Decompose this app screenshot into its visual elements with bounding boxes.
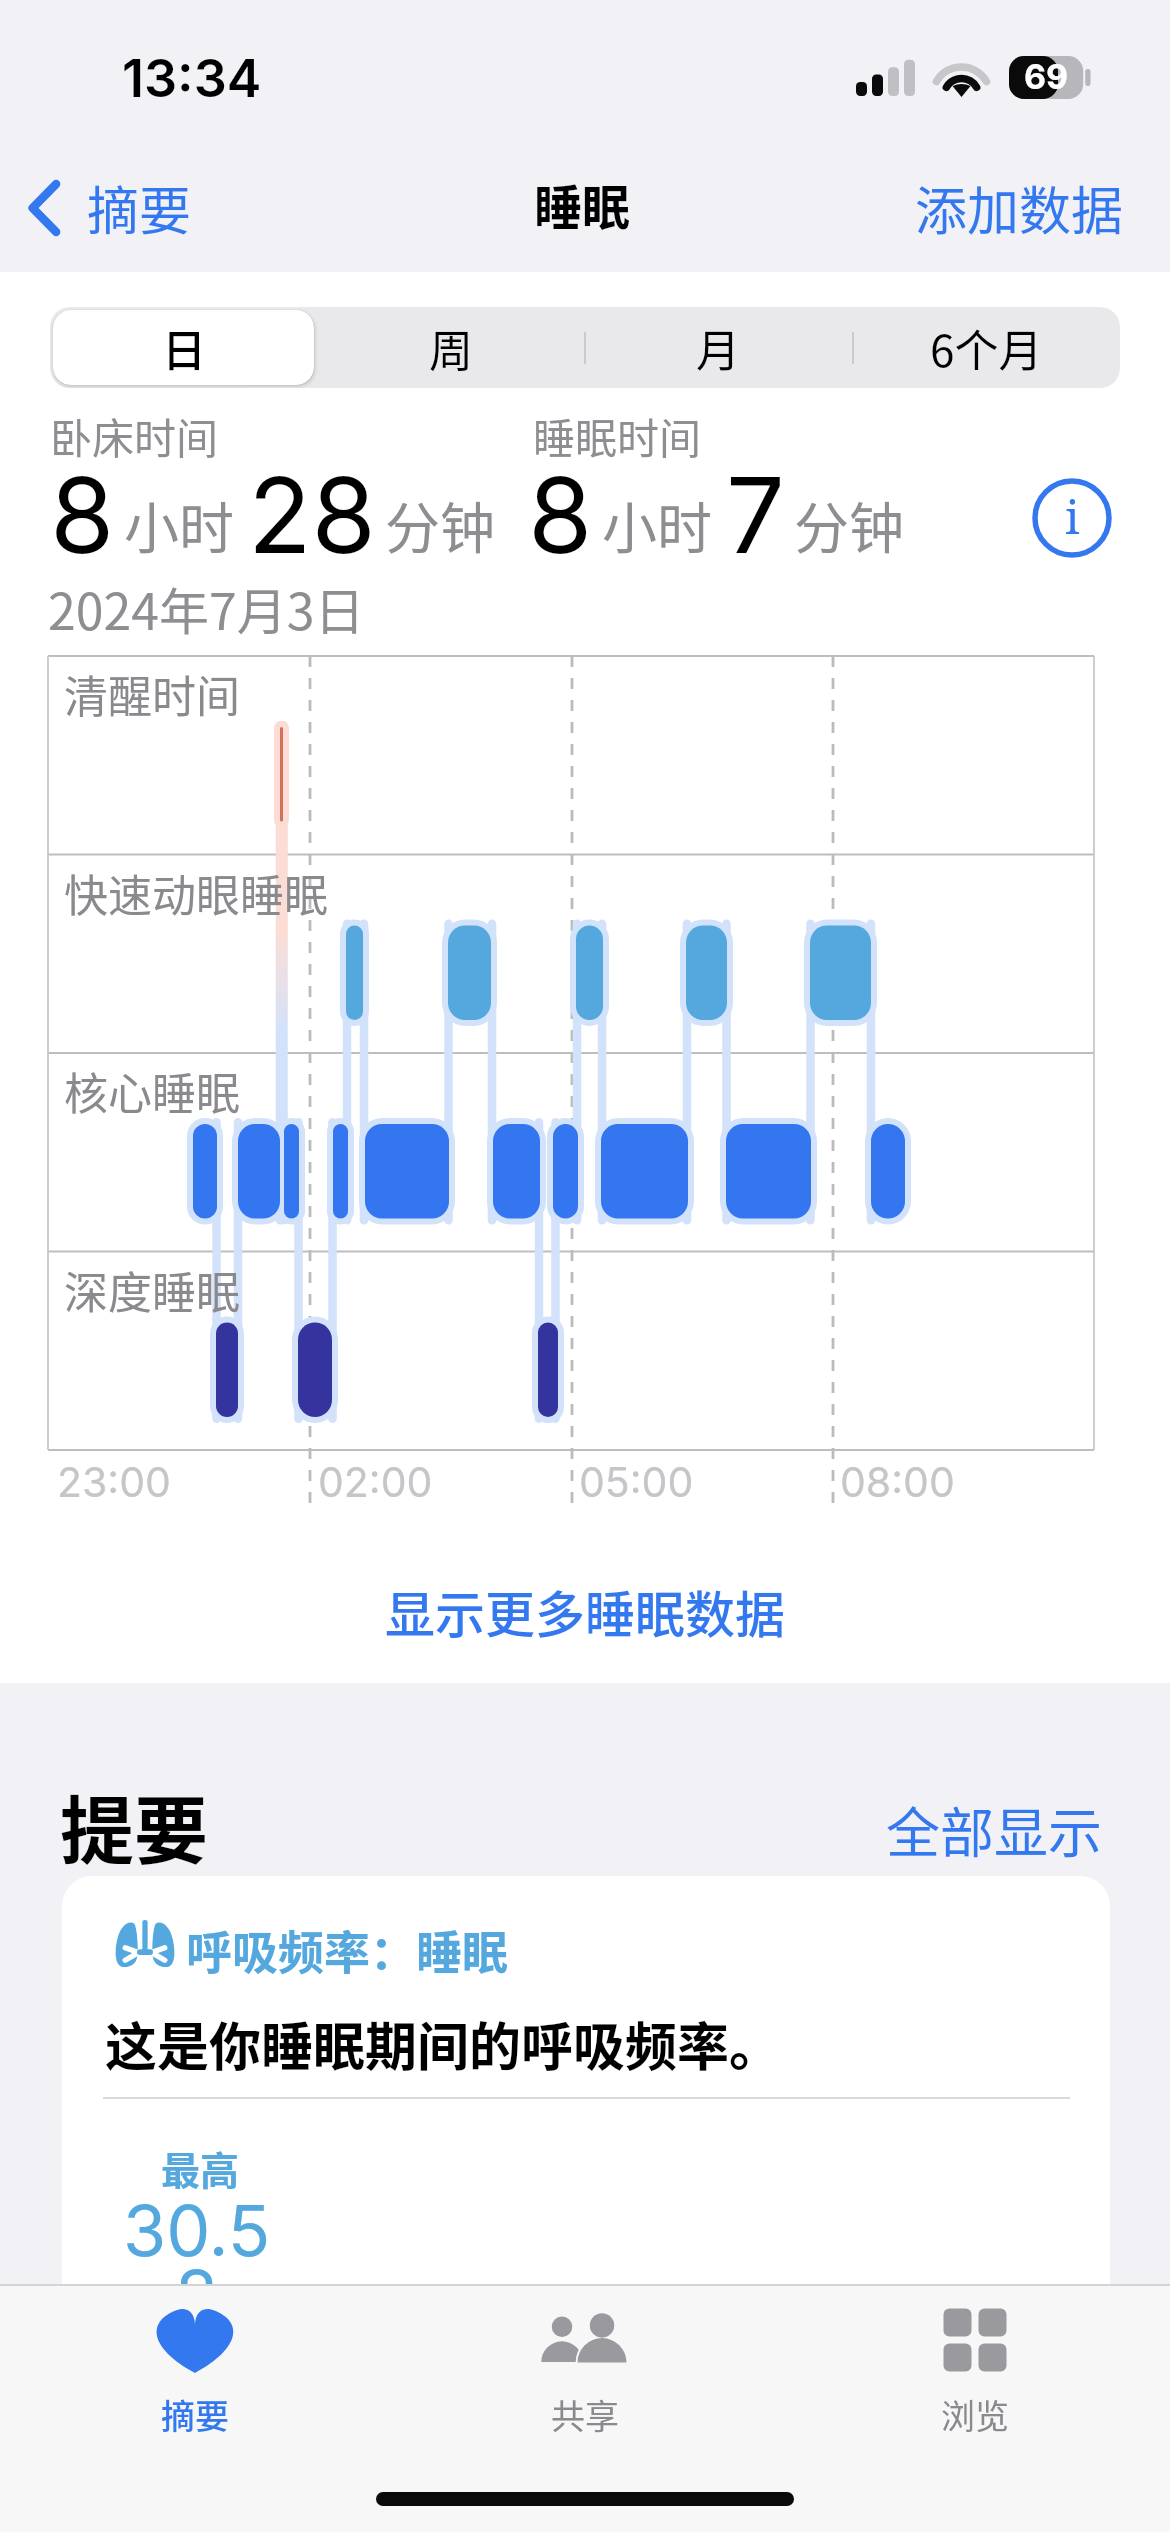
button[interactable]: 周 bbox=[317, 307, 584, 388]
staticText: 分钟 bbox=[794, 484, 905, 564]
staticText: 7 bbox=[726, 452, 785, 578]
staticText: 月 bbox=[696, 316, 740, 380]
button[interactable]: 6个月 bbox=[852, 307, 1120, 388]
button[interactable]: 呼吸频率：睡眠 bbox=[62, 1876, 1110, 2286]
staticText: 8 bbox=[175, 2253, 219, 2286]
staticText: 小时 bbox=[124, 484, 235, 564]
button[interactable]: 浏览 bbox=[780, 2286, 1170, 2532]
staticText: 深度睡眠 bbox=[64, 1258, 240, 1322]
button[interactable]: 共享 bbox=[390, 2286, 780, 2532]
button[interactable]: 全部显示 bbox=[880, 1784, 1108, 1874]
staticText: 清醒时间 bbox=[64, 662, 240, 726]
staticText: 摘要 bbox=[161, 2390, 229, 2439]
staticText: 28 bbox=[248, 452, 376, 578]
staticText: 周 bbox=[429, 316, 473, 380]
staticText: 13:34 bbox=[122, 47, 262, 110]
staticText: 02:00 bbox=[318, 1457, 433, 1507]
staticText: 8 bbox=[50, 452, 115, 578]
button[interactable]: 日 bbox=[50, 307, 317, 388]
staticText: 提要 bbox=[60, 1772, 208, 1879]
staticText: 6个月 bbox=[930, 316, 1043, 380]
button[interactable]: 显示更多睡眠数据 bbox=[0, 1556, 1170, 1666]
button[interactable]: 添加数据 bbox=[907, 158, 1132, 257]
staticText: 显示更多睡眠数据 bbox=[385, 1575, 785, 1647]
staticText: 30.5 bbox=[123, 2188, 271, 2273]
staticText: 2024年7月3日 bbox=[48, 572, 365, 644]
button[interactable]: 摘要 bbox=[0, 2286, 390, 2532]
button[interactable]: Info bbox=[1032, 478, 1112, 558]
staticText: 摘要 bbox=[87, 170, 192, 245]
staticText: 呼吸频率：睡眠 bbox=[186, 1916, 508, 1983]
staticText: 69 bbox=[1024, 56, 1069, 97]
staticText: 日 bbox=[162, 316, 206, 380]
staticText: 小时 bbox=[602, 484, 713, 564]
staticText: 卧床时间 bbox=[50, 405, 219, 466]
staticText: i bbox=[1065, 485, 1080, 548]
staticText: 核心睡眠 bbox=[64, 1059, 240, 1123]
staticText: 23:00 bbox=[57, 1457, 171, 1507]
staticText: 分钟 bbox=[385, 484, 496, 564]
staticText: 睡眠 bbox=[534, 169, 631, 239]
button[interactable]: Back to 摘要 bbox=[17, 158, 200, 257]
staticText: 05:00 bbox=[579, 1457, 694, 1507]
staticText: 浏览 bbox=[941, 2390, 1009, 2439]
staticText: 08:00 bbox=[840, 1457, 955, 1507]
staticText: 快速动眼睡眠 bbox=[64, 861, 328, 925]
staticText: 8 bbox=[528, 452, 593, 578]
staticText: 最高 bbox=[161, 2140, 240, 2196]
staticText: 这是你睡眠期间的呼吸频率。 bbox=[105, 2006, 782, 2081]
button[interactable]: 月 bbox=[584, 307, 852, 388]
staticText: 睡眠时间 bbox=[533, 405, 702, 466]
staticText: 共享 bbox=[551, 2390, 619, 2439]
